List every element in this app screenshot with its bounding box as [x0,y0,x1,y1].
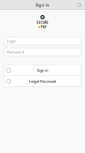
staticText: Sign in [37,68,48,73]
button[interactable]: Forgot Password [4,76,81,86]
button[interactable]: Help [75,1,83,9]
staticText: SECURE [36,20,48,25]
button[interactable]: Login [4,37,81,45]
staticText: Sign in [35,2,49,8]
staticText: Forgot Password [29,79,56,84]
staticText: Login [6,38,15,44]
staticText: Password [6,49,23,55]
staticText: PAY [41,25,47,29]
button[interactable]: Sign in [4,65,81,75]
button[interactable]: Password [4,48,81,56]
